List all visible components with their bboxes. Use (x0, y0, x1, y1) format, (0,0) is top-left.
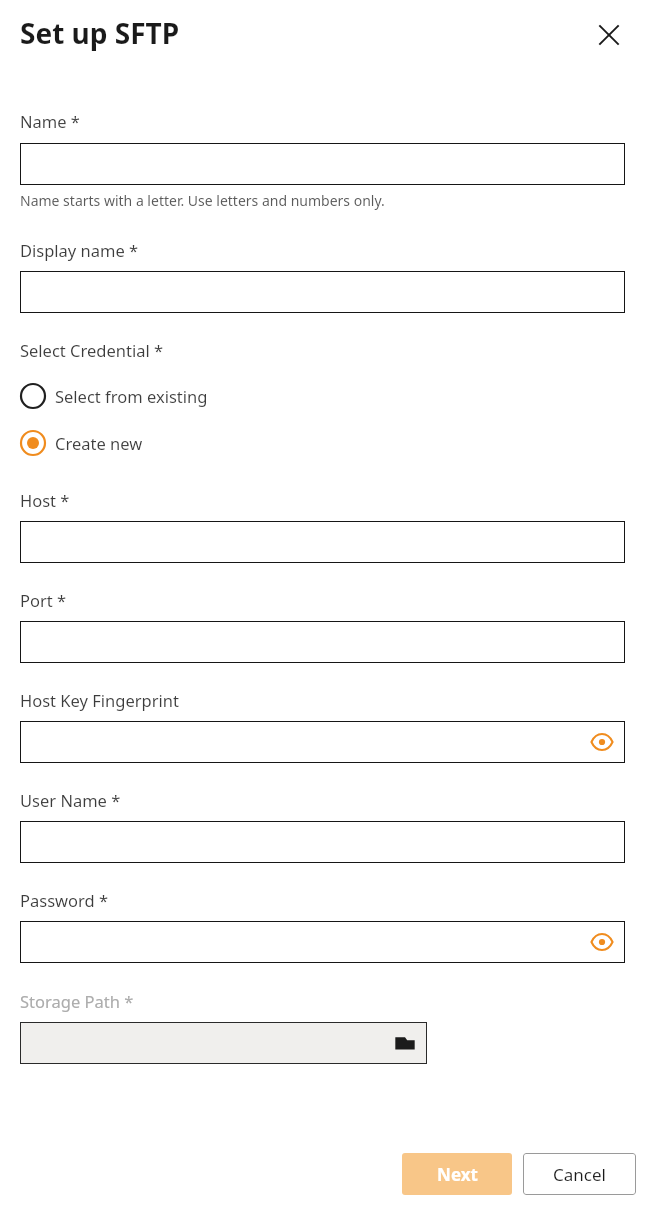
staticText: Select Credential * (20, 339, 164, 361)
staticText: Password * (20, 889, 109, 911)
button[interactable]: Host (20, 521, 625, 563)
button[interactable]: Cancel (523, 1153, 636, 1195)
staticText: Cancel (553, 1163, 606, 1186)
staticText: Host Key Fingerprint (20, 689, 179, 711)
button[interactable]: Create new (19, 426, 143, 460)
staticText: Host * (20, 489, 70, 511)
button[interactable]: Name (20, 143, 625, 185)
button[interactable]: Display name (20, 271, 625, 313)
staticText: Port * (20, 589, 67, 611)
button[interactable]: Next (402, 1153, 512, 1195)
staticText: Create new (55, 432, 143, 454)
staticText: Storage Path * (20, 990, 134, 1012)
staticText: Set up SFTP (20, 14, 180, 52)
button[interactable]: Host Key Fingerprint (20, 721, 625, 763)
staticText: Display name * (20, 239, 139, 261)
button[interactable]: Close (588, 14, 630, 56)
button[interactable]: Password (20, 921, 625, 963)
staticText: User Name * (20, 789, 121, 811)
button[interactable]: Select from existing (19, 379, 208, 413)
staticText: Next (437, 1163, 478, 1186)
button[interactable]: Port (20, 621, 625, 663)
staticText: Select from existing (55, 385, 208, 407)
staticText: Name starts with a letter. Use letters a… (20, 191, 385, 210)
button[interactable]: Storage Path browse (20, 1022, 427, 1064)
staticText: Name * (20, 110, 80, 132)
button[interactable]: User Name (20, 821, 625, 863)
